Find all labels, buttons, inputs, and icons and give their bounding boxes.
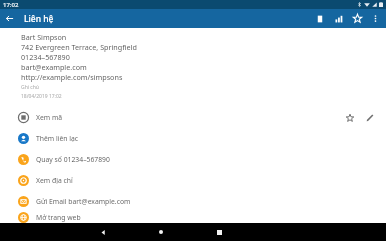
staticText: 742 Evergreen Terrace, Springfield [21,42,137,52]
staticText: bart@example.com [21,62,87,72]
button[interactable]: Recent apps [211,224,227,240]
button[interactable]: Home [153,224,169,240]
button[interactable]: Quay số 01234–567890 [0,149,386,170]
button[interactable]: Add to favourites [342,110,358,126]
button[interactable]: Gửi Email bart@example.com [0,191,386,212]
staticText: 17:02 [3,1,19,9]
button[interactable]: Back [0,9,19,28]
button[interactable]: Back [95,224,111,240]
button[interactable]: More options [367,10,384,27]
button[interactable]: Copy [310,9,329,28]
button[interactable]: Mở trang web [0,212,386,223]
staticText: Xem mã [36,113,63,122]
staticText: 18/04/2019 17:02 [21,93,62,100]
button[interactable]: Favorite [348,9,367,28]
button[interactable]: Xem địa chỉ [0,170,386,191]
button[interactable]: Thêm liên lạc [0,128,386,149]
staticText: Xem địa chỉ [36,176,73,185]
staticText: http://example.com/simpsons [21,72,123,82]
staticText: Gửi Email bart@example.com [36,197,131,206]
staticText: 01234–567890 [21,52,70,62]
staticText: Quay số 01234–567890 [36,155,110,164]
staticText: Bart Simpson [21,32,67,42]
staticText: Thêm liên lạc [36,134,79,143]
staticText: Liên hệ [24,13,54,25]
staticText: Mở trang web [36,213,81,222]
button[interactable]: Edit [362,110,378,126]
button[interactable]: Xem mã [0,107,386,128]
button[interactable]: Statistics [329,9,348,28]
staticText: Ghi chú [21,84,39,91]
